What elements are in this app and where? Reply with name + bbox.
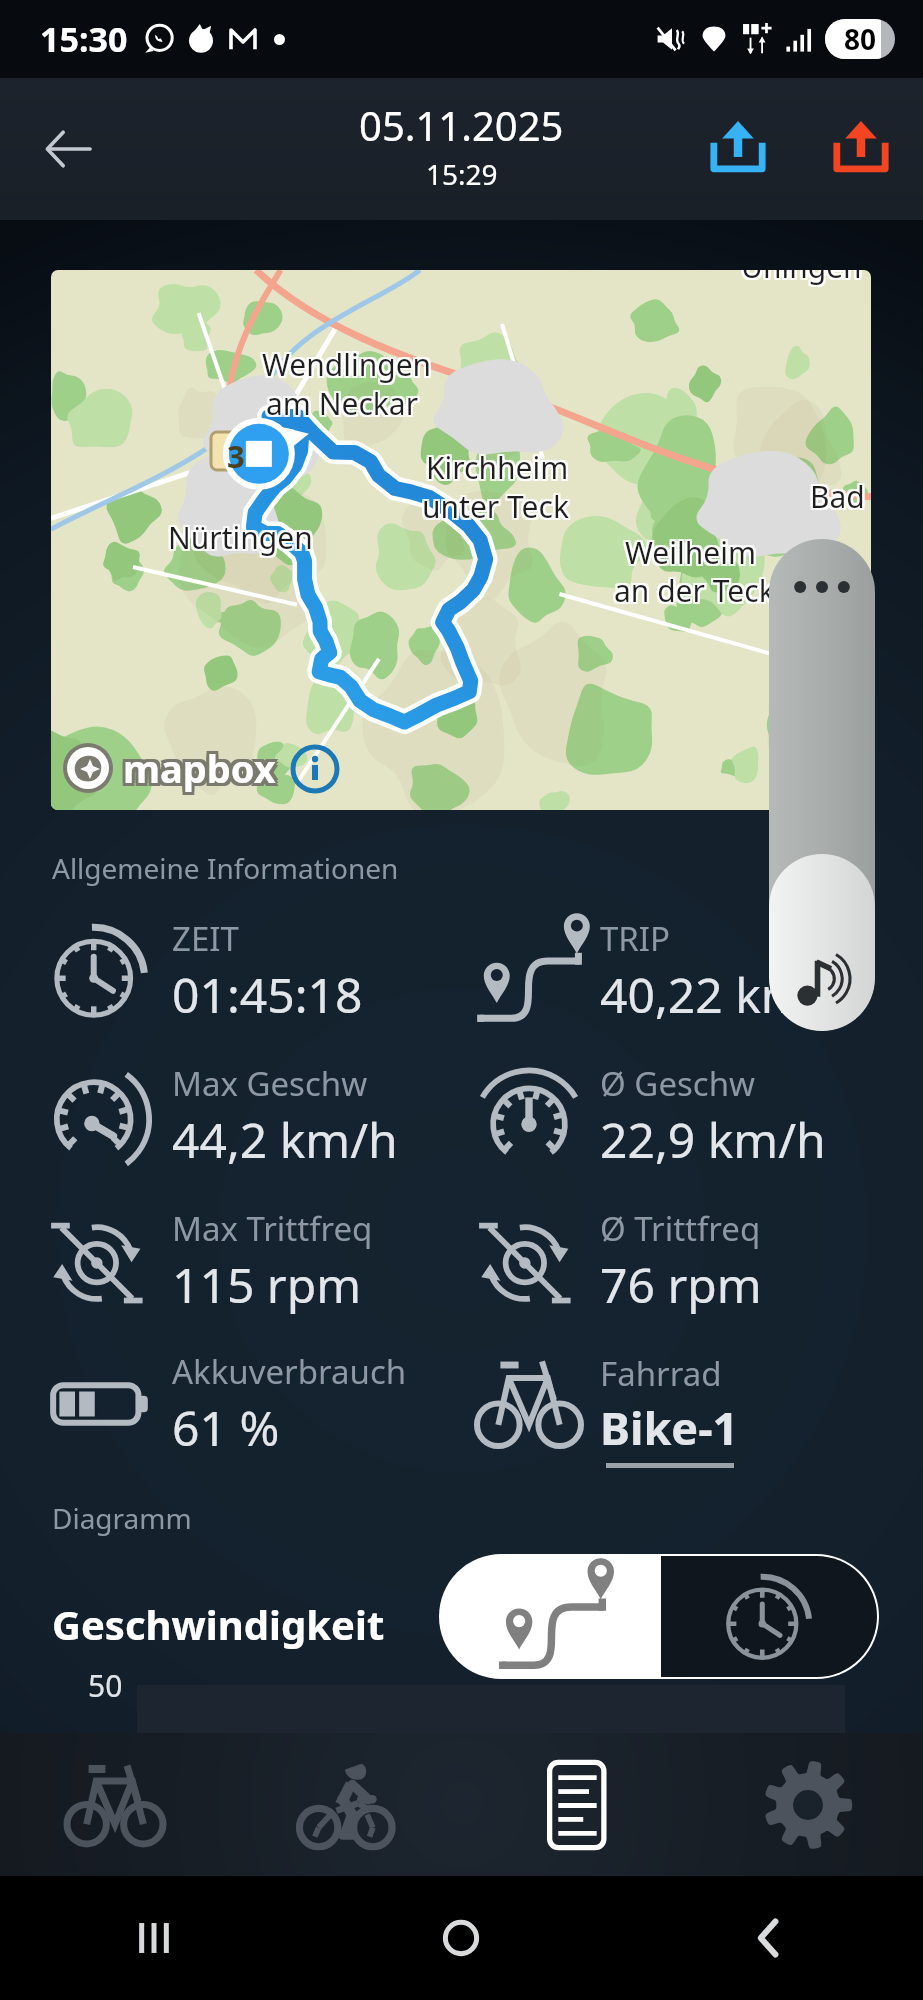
staticText: Uhingen: [743, 270, 864, 287]
staticText: Wendlingen: [264, 342, 434, 383]
staticText: 01:45:18: [172, 962, 363, 1027]
button[interactable]: Recents: [0, 1876, 307, 2000]
staticText: 22,9 km/h: [600, 1107, 826, 1172]
button[interactable]: Max Geschw: [46, 1046, 466, 1186]
staticText: Ø Trittfreq: [600, 1206, 761, 1251]
staticText: an der Teck: [612, 570, 773, 611]
staticText: Nürtingen: [168, 515, 313, 556]
staticText: Wendlingen: [260, 346, 430, 387]
staticText: mapbox: [120, 742, 273, 794]
staticText: Kirchheim: [424, 449, 567, 490]
staticText: Bad: [812, 478, 867, 519]
staticText: mapbox: [123, 745, 276, 797]
button[interactable]: Export: [823, 111, 899, 187]
button[interactable]: Max Trittfreq: [46, 1191, 466, 1331]
button[interactable]: Settings: [692, 1733, 923, 1876]
staticText: an der Teck: [612, 568, 773, 609]
staticText: Ø Geschw: [600, 1061, 755, 1106]
button[interactable]: ZEIT: [46, 901, 466, 1041]
staticText: mapbox: [126, 739, 279, 791]
staticText: mapbox: [126, 745, 279, 797]
button[interactable]: Details: [461, 1733, 692, 1876]
staticText: Kirchheim: [426, 447, 569, 488]
staticText: unter Teck: [422, 486, 569, 527]
staticText: 61 %: [172, 1395, 280, 1460]
staticText: Kirchheim: [426, 449, 569, 490]
staticText: Uhingen: [739, 270, 860, 285]
staticText: Nürtingen: [168, 519, 313, 560]
staticText: Uhingen: [739, 270, 860, 289]
button[interactable]: Rides: [230, 1733, 461, 1876]
staticText: Max Trittfreq: [172, 1206, 373, 1251]
staticText: am Neckar: [268, 381, 421, 422]
staticText: Bad: [810, 478, 865, 519]
staticText: an der Teck: [614, 572, 775, 613]
staticText: Bad: [810, 476, 865, 517]
staticText: Weilheim: [627, 534, 758, 575]
staticText: mapbox: [126, 742, 279, 794]
staticText: unter Teck: [420, 484, 567, 525]
staticText: Weilheim: [623, 534, 754, 575]
staticText: 76 rpm: [600, 1252, 762, 1317]
staticText: Weilheim: [623, 530, 754, 571]
staticText: an der Teck: [612, 572, 773, 613]
staticText: Kirchheim: [424, 447, 567, 488]
staticText: Geschwindigkeit: [52, 1597, 385, 1651]
staticText: Wendlingen: [262, 346, 432, 387]
staticText: 15:29: [426, 155, 498, 193]
staticText: Uhingen: [741, 270, 862, 289]
button[interactable]: Time chart: [661, 1556, 877, 1677]
button[interactable]: Ø Geschw: [474, 1046, 894, 1186]
staticText: Uhingen: [741, 270, 862, 285]
staticText: Bad: [808, 476, 863, 517]
staticText: Nürtingen: [166, 515, 311, 556]
staticText: Kirchheim: [424, 445, 567, 486]
staticText: Uhingen: [743, 270, 864, 285]
staticText: Uhingen: [739, 270, 860, 287]
button[interactable]: Distance chart: [439, 1554, 659, 1679]
staticText: 05.11.2025: [359, 98, 564, 152]
button[interactable]: Home: [307, 1876, 615, 2000]
button[interactable]: TRIP: [474, 901, 894, 1041]
staticText: Wendlingen: [264, 344, 434, 385]
staticText: Nürtingen: [170, 515, 315, 556]
button[interactable]: Akkuverbrauch: [46, 1334, 466, 1474]
staticText: Bad: [808, 478, 863, 519]
staticText: am Neckar: [266, 383, 419, 424]
button[interactable]: Fahrrad: [474, 1334, 894, 1474]
staticText: unter Teck: [420, 486, 567, 527]
button[interactable]: Wendlingen: [51, 270, 871, 810]
button[interactable]: Bikes: [0, 1733, 230, 1876]
staticText: Kirchheim: [428, 445, 571, 486]
button[interactable]: Back: [30, 111, 106, 187]
staticText: an der Teck: [614, 570, 775, 611]
button[interactable]: Volume: [769, 539, 875, 1031]
staticText: unter Teck: [424, 488, 571, 529]
staticText: unter Teck: [424, 484, 571, 525]
button[interactable]: Share: [700, 111, 776, 187]
staticText: Nürtingen: [166, 517, 311, 558]
staticText: mapbox: [120, 739, 273, 791]
staticText: Wendlingen: [262, 342, 432, 383]
staticText: Kirchheim: [426, 445, 569, 486]
staticText: unter Teck: [424, 486, 571, 527]
staticText: ZEIT: [172, 916, 239, 961]
staticText: Weilheim: [625, 532, 756, 573]
staticText: am Neckar: [266, 385, 419, 426]
staticText: Uhingen: [741, 270, 862, 287]
staticText: 50: [88, 1665, 123, 1706]
staticText: 3: [227, 435, 245, 477]
staticText: Kirchheim: [428, 447, 571, 488]
staticText: unter Teck: [420, 488, 567, 529]
staticText: Bad: [810, 474, 865, 515]
staticText: Bad: [812, 476, 867, 517]
staticText: Wendlingen: [264, 346, 434, 387]
staticText: Bike-1: [600, 1397, 739, 1458]
staticText: an der Teck: [616, 568, 777, 609]
staticText: 15:30: [40, 16, 128, 62]
staticText: TRIP: [600, 916, 671, 961]
button[interactable]: Back: [615, 1876, 923, 2000]
staticText: Wendlingen: [260, 342, 430, 383]
staticText: mapbox: [120, 745, 273, 797]
button[interactable]: Ø Trittfreq: [474, 1191, 894, 1331]
